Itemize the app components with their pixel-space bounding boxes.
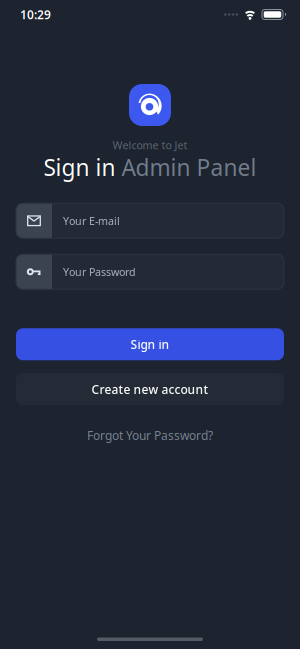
staticText: Welcome to Jet	[112, 138, 187, 152]
staticText: Sign in	[130, 336, 169, 352]
button[interactable]: Your Password	[16, 254, 284, 289]
staticText: Your Password	[63, 265, 136, 279]
staticText: 10:29	[20, 6, 51, 22]
button[interactable]: Create new account	[16, 373, 284, 405]
staticText: Sign in	[43, 152, 115, 182]
button[interactable]: Your E-mail	[16, 203, 284, 238]
staticText: Forgot Your Password?	[87, 427, 213, 443]
button[interactable]: Forgot Your Password?	[87, 427, 213, 443]
button[interactable]: Sign in	[16, 328, 284, 360]
staticText: Create new account	[91, 381, 208, 397]
staticText: Admin Panel	[121, 152, 256, 182]
staticText: Your E-mail	[63, 214, 120, 228]
